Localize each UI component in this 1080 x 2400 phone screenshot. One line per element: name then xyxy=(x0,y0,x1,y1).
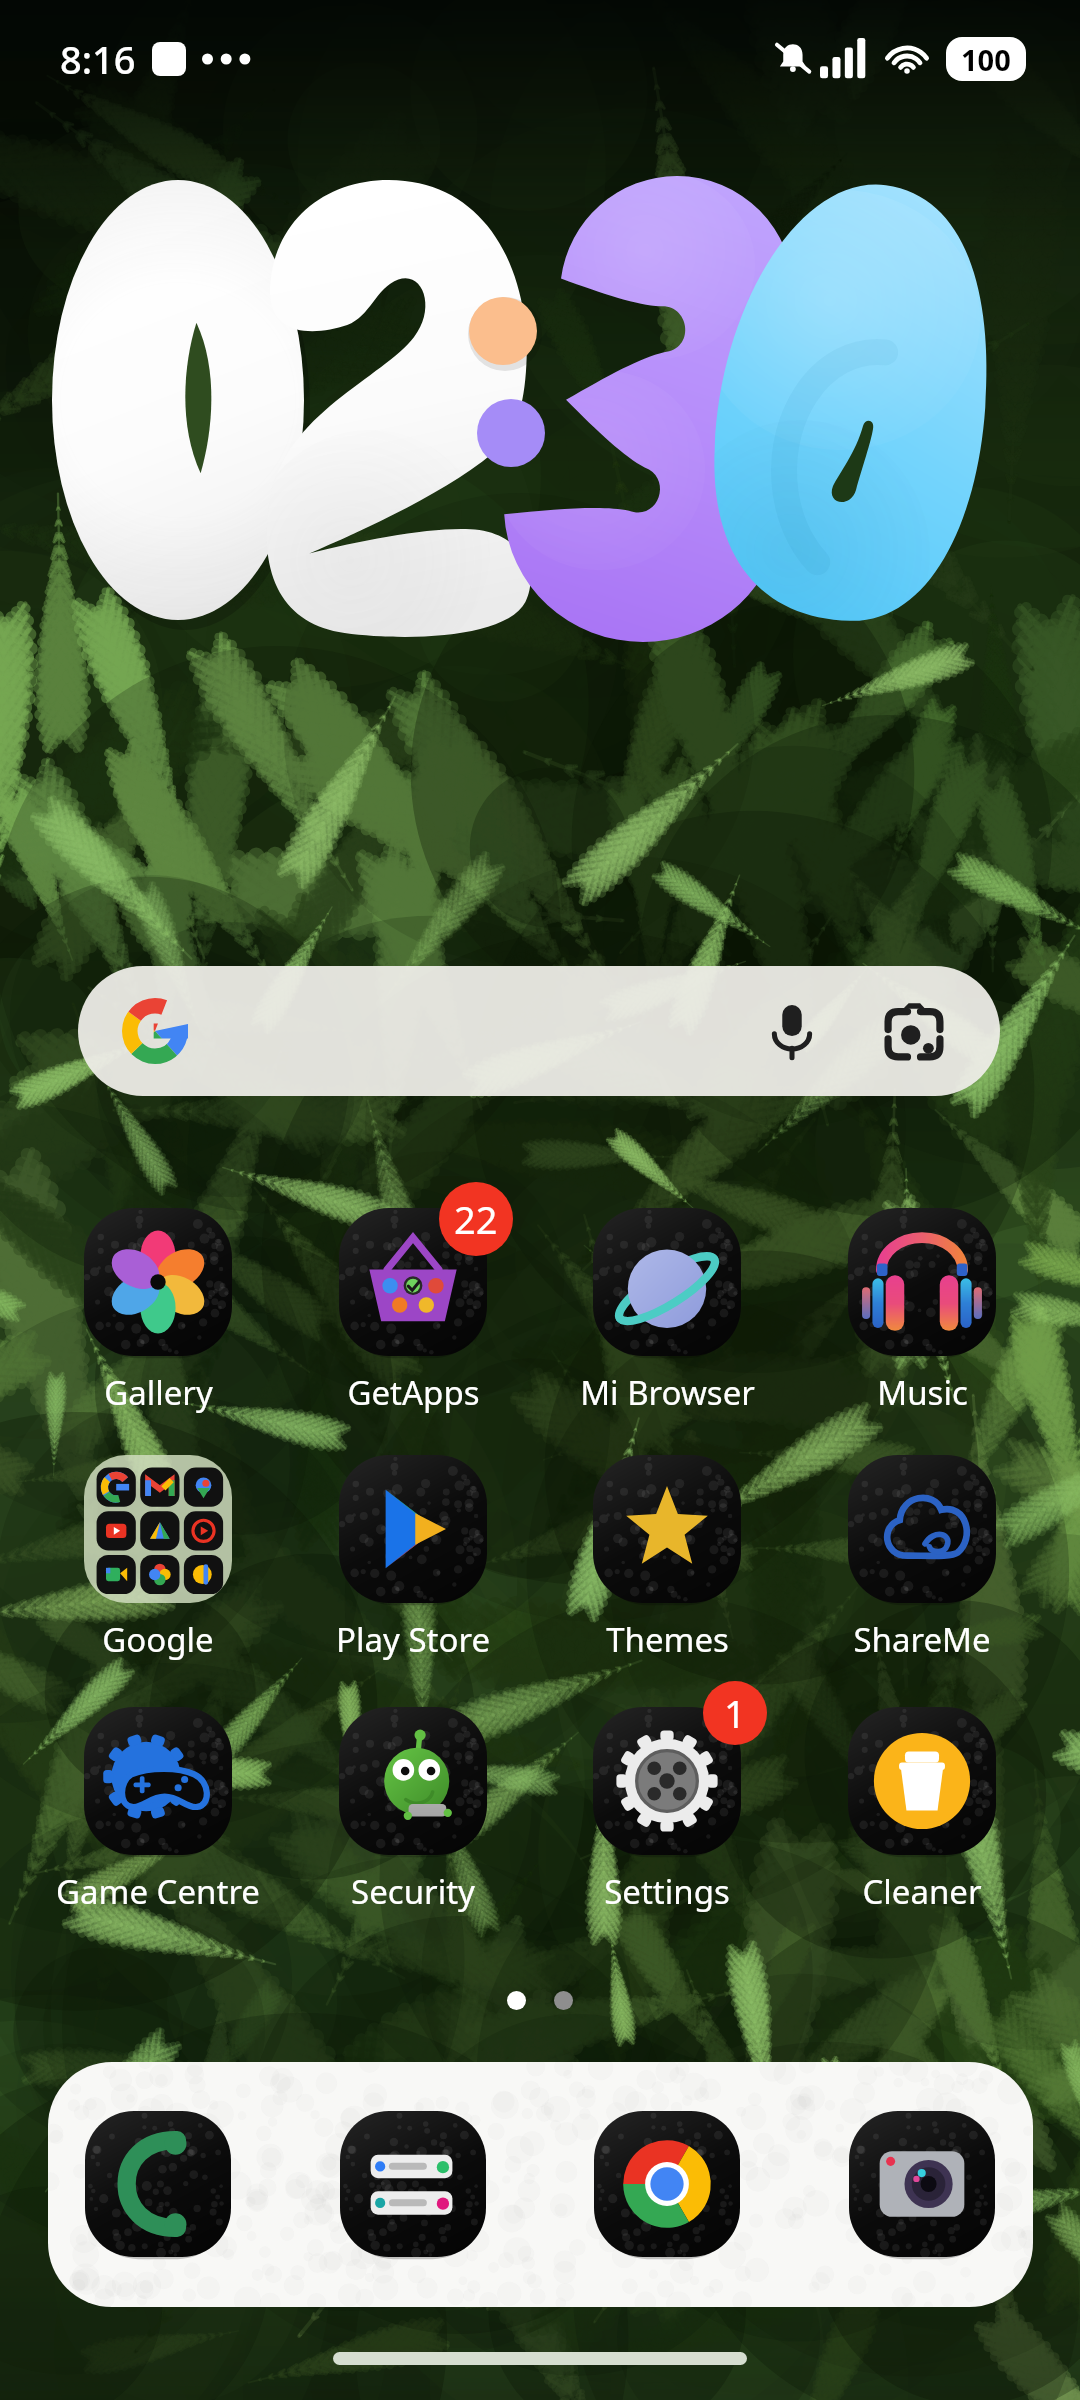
staticText: 100 xyxy=(961,40,1011,79)
button[interactable]: Google Lens xyxy=(878,995,950,1067)
button[interactable]: Google xyxy=(31,1439,285,1662)
button[interactable]: Chrome xyxy=(594,2111,740,2257)
staticText: Game Centre xyxy=(56,1869,260,1914)
button[interactable]: Gallery xyxy=(31,1192,285,1415)
staticText: 1 xyxy=(724,1687,746,1739)
button[interactable]: Music xyxy=(795,1192,1049,1415)
staticText: Cleaner xyxy=(862,1869,982,1914)
button[interactable]: Cleaner xyxy=(795,1691,1049,1914)
staticText: Settings xyxy=(604,1869,730,1914)
button[interactable]: 1 xyxy=(540,1691,794,1914)
button[interactable]: Clock 02:36 xyxy=(0,0,1080,2400)
button[interactable]: Security xyxy=(286,1691,540,1914)
button[interactable]: Phone xyxy=(85,2111,231,2257)
staticText: 22 xyxy=(454,1193,498,1245)
button[interactable]: Mi Browser xyxy=(540,1192,794,1415)
staticText: Gallery xyxy=(104,1370,213,1415)
staticText: Mi Browser xyxy=(580,1370,755,1415)
staticText: Play Store xyxy=(336,1617,490,1662)
staticText: 8:16 xyxy=(60,33,136,85)
staticText: ShareMe xyxy=(853,1617,991,1662)
button[interactable]: Themes xyxy=(540,1439,794,1662)
staticText: GetApps xyxy=(347,1370,480,1415)
button[interactable]: ShareMe xyxy=(795,1439,1049,1662)
button[interactable]: Play Store xyxy=(286,1439,540,1662)
staticText: Music xyxy=(877,1370,968,1415)
staticText: Themes xyxy=(606,1617,729,1662)
staticText: Google xyxy=(102,1617,214,1662)
staticText: Security xyxy=(351,1869,475,1914)
button[interactable]: Game Centre xyxy=(31,1691,285,1914)
button[interactable]: Camera xyxy=(849,2111,995,2257)
button[interactable]: 22 xyxy=(286,1192,540,1415)
button[interactable]: Voice search xyxy=(756,995,828,1067)
button[interactable]: Search xyxy=(78,966,1000,1096)
button[interactable]: Messages xyxy=(340,2111,486,2257)
